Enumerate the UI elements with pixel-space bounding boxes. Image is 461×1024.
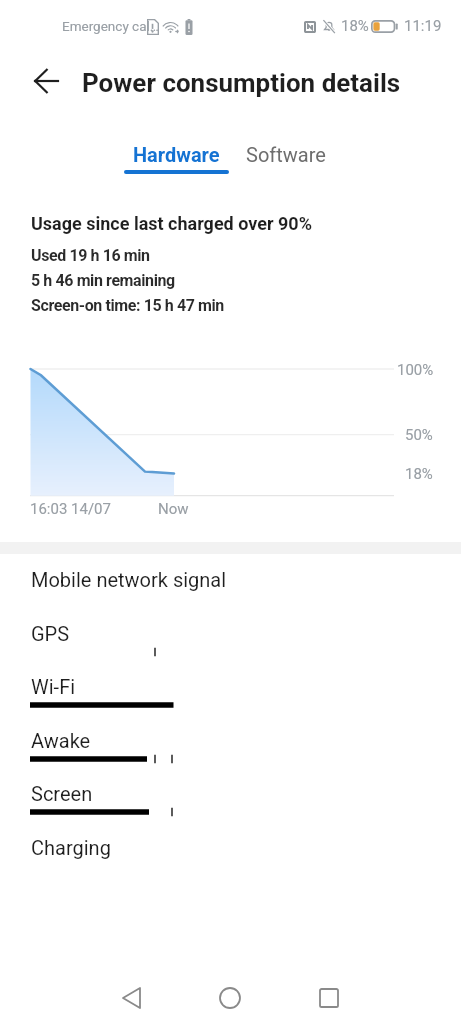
staticText: Software [246,143,326,166]
button[interactable]: Recents [306,975,352,1021]
button[interactable]: Back [108,975,154,1021]
staticText: Hardware [133,143,220,166]
staticText: Screen-on time: 15 h 47 min [31,296,224,315]
staticText: Awake [31,729,91,752]
staticText: 11:19 [404,17,442,35]
button[interactable]: GPS [0,619,461,669]
staticText: 5 h 46 min remaining [31,271,175,290]
button[interactable]: Awake [0,726,461,776]
staticText: Charging [31,836,111,859]
staticText: 18% [405,465,433,483]
staticText: Emergency cal… [62,18,159,34]
button[interactable]: Mobile network signal [0,565,461,615]
staticText: Used 19 h 16 min [31,246,150,265]
button[interactable]: Hardware [124,143,229,183]
staticText: GPS [31,622,70,645]
staticText: 50% [405,426,433,444]
staticText: Mobile network signal [31,568,227,591]
staticText: 100% [397,361,434,379]
staticText: Screen [31,782,93,805]
button[interactable]: Software [245,143,327,177]
staticText: 16:03 14/07 [30,500,111,518]
button[interactable]: Screen [0,779,461,829]
button[interactable]: Charging [0,833,461,883]
button[interactable]: Wi-Fi [0,672,461,722]
button[interactable]: Back [24,59,68,103]
staticText: 18% [341,17,369,35]
staticText: Power consumption details [82,68,401,98]
staticText: Usage since last charged over 90% [31,213,313,234]
staticText: Now [158,500,189,518]
button[interactable]: Home [207,975,253,1021]
staticText: Wi-Fi [31,675,76,698]
